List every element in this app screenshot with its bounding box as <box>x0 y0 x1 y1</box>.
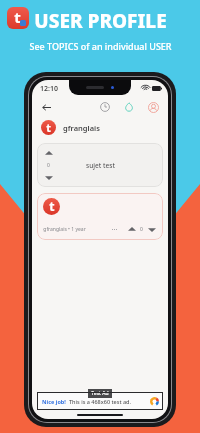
button[interactable]: t <box>41 120 168 135</box>
other: App logo <box>7 7 29 29</box>
staticText: 12:10 <box>40 84 58 94</box>
staticText: sujet test <box>86 161 115 170</box>
staticText: 0 <box>47 162 50 169</box>
staticText: gfranglais <box>63 123 100 133</box>
button[interactable]: Profile <box>145 99 161 115</box>
staticText: 0 <box>140 226 143 233</box>
staticText: Test Ad <box>91 390 109 397</box>
button[interactable]: t <box>37 193 163 240</box>
staticText: This is a 468x60 test ad. <box>69 398 131 405</box>
button[interactable]: Upvote <box>37 143 163 187</box>
button[interactable]: Downvote <box>146 224 157 235</box>
button[interactable]: Downvote <box>43 172 54 183</box>
staticText: See TOPICS of an individual USER <box>29 40 172 52</box>
button[interactable]: Nice job! <box>37 392 163 410</box>
staticText: t <box>14 7 21 27</box>
staticText: t <box>46 120 51 135</box>
button[interactable]: More options <box>108 223 120 235</box>
button[interactable]: Upvote <box>126 224 137 235</box>
button[interactable]: Back <box>39 100 53 114</box>
button[interactable]: Upvote <box>43 148 54 159</box>
button[interactable]: History <box>97 99 113 115</box>
staticText: Nice job! <box>42 398 66 405</box>
button[interactable]: Trending <box>121 99 137 115</box>
staticText: USER PROFILE <box>34 8 167 34</box>
staticText: gfranglais • 1 year <box>43 226 86 233</box>
staticText: t <box>49 198 55 215</box>
